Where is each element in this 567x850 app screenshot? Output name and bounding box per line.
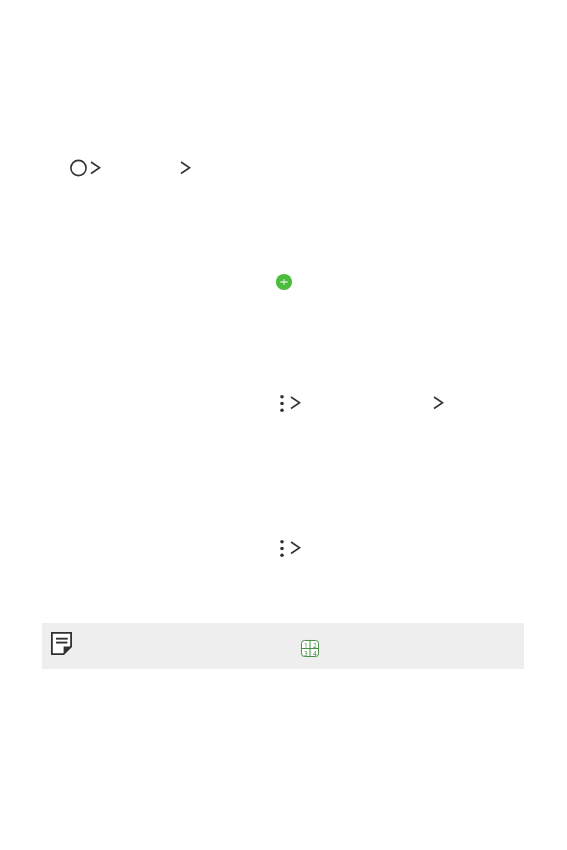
button[interactable]: Grid layout [298, 636, 322, 660]
staticText: 3 [304, 649, 308, 658]
button[interactable]: Add item [272, 270, 296, 294]
staticText: 2 [313, 641, 317, 650]
button[interactable]: Folder [174, 152, 204, 184]
button[interactable]: Notes [45, 627, 77, 659]
staticText: 4 [313, 649, 317, 658]
button[interactable]: Root folder [62, 152, 110, 184]
staticText: 1 [304, 641, 308, 650]
button[interactable]: More options [272, 533, 308, 569]
button[interactable]: More options [272, 388, 308, 424]
button[interactable]: Open [428, 388, 456, 416]
